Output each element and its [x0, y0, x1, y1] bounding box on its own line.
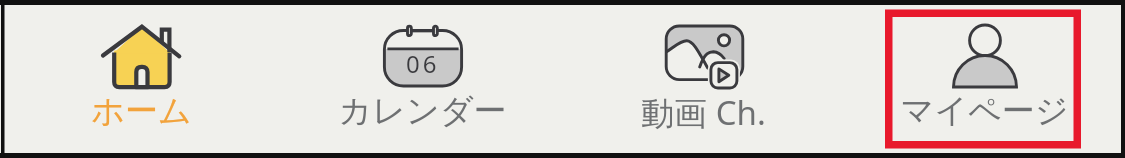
button[interactable]: Home — [0, 0, 282, 158]
other: Video Channel — [654, 10, 754, 90]
button[interactable]: Video Channel — [563, 0, 844, 158]
other: Home — [91, 10, 191, 90]
button[interactable]: Calendar — [282, 0, 563, 158]
staticText: マイページ — [900, 90, 1069, 132]
staticText: ホーム — [91, 90, 192, 132]
staticText: 06 — [406, 47, 440, 80]
other: My Page — [935, 10, 1035, 90]
button[interactable]: My Page — [844, 0, 1125, 158]
staticText: カレンダー — [338, 90, 507, 132]
staticText: 動画 Ch. — [641, 90, 766, 135]
other: Calendar — [373, 10, 473, 90]
